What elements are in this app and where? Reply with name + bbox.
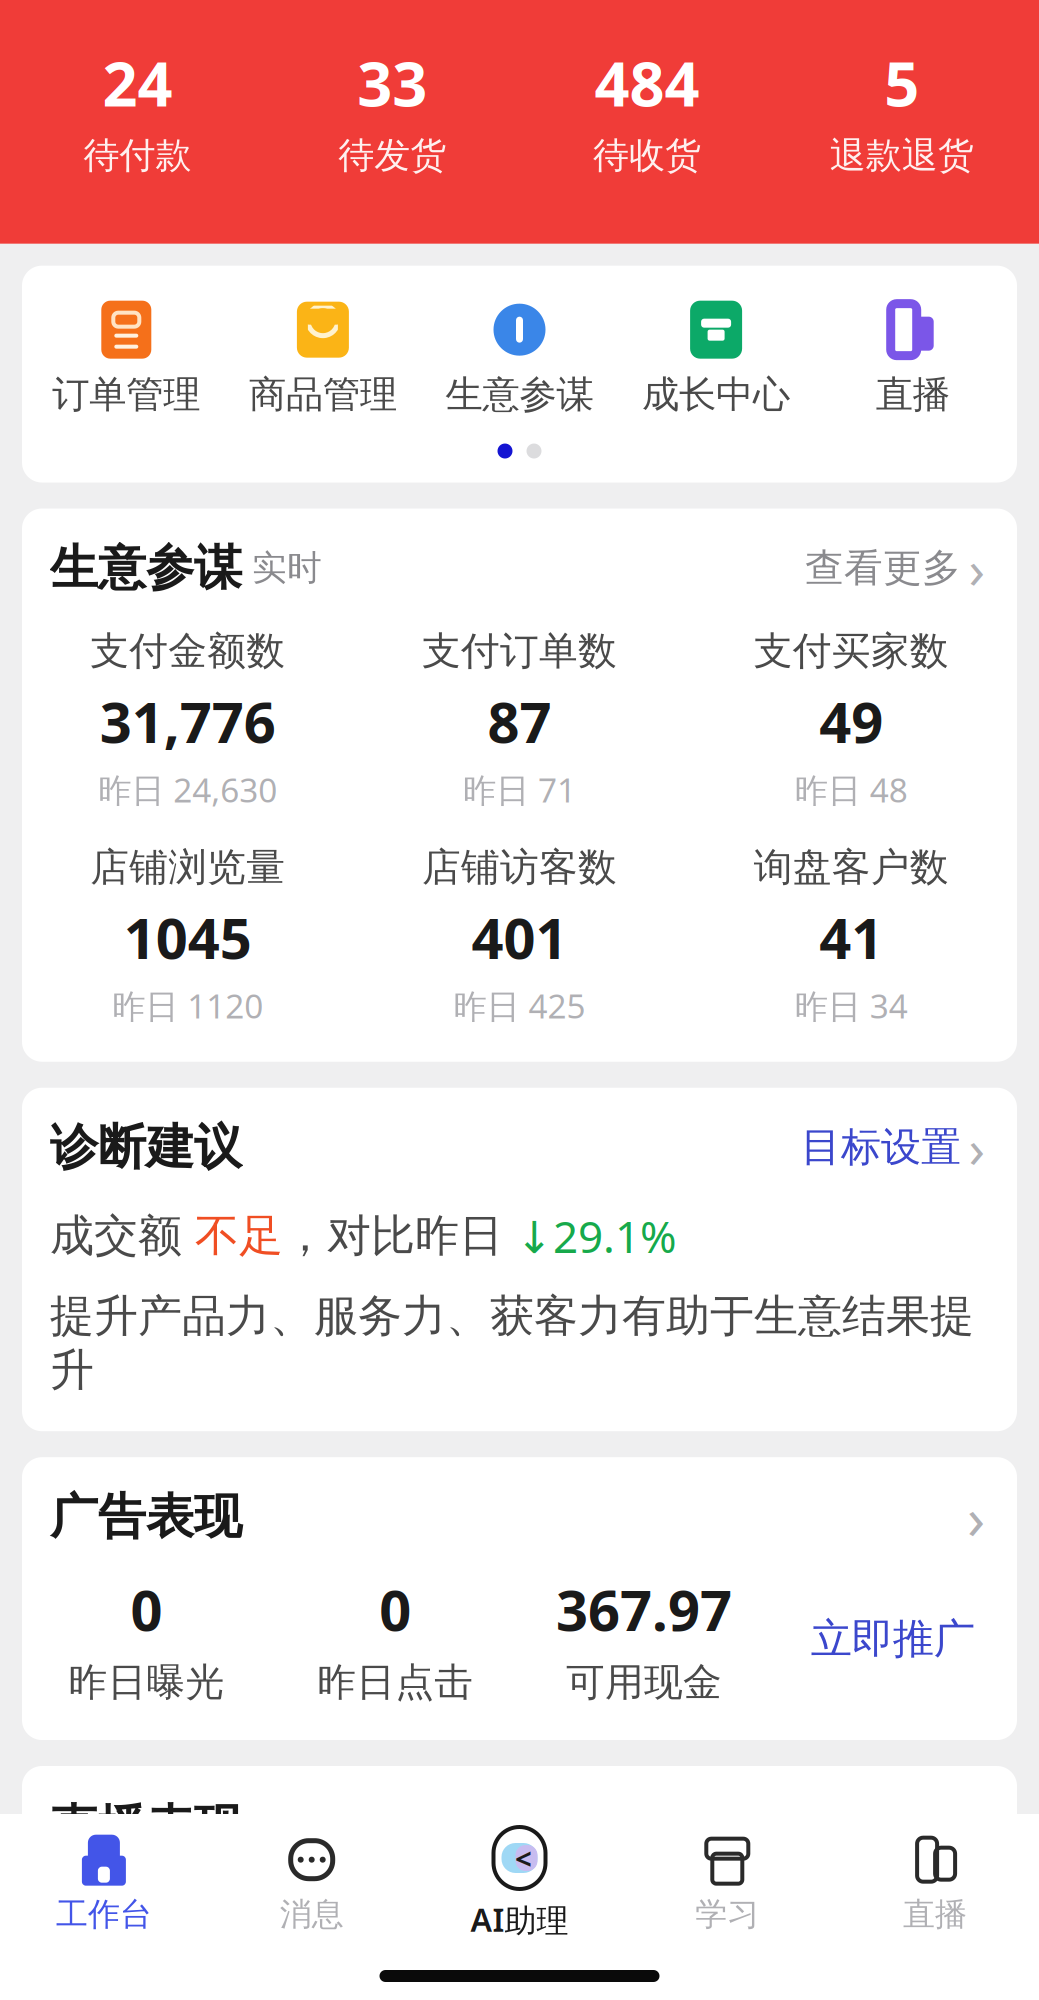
staticText: 学习: [695, 1895, 759, 1934]
button[interactable]: 消息: [208, 1821, 416, 1942]
staticText: 提升产品力、服务力、获客力有助于生意结果提升: [50, 1289, 974, 1397]
staticText: 工作台: [56, 1895, 152, 1934]
staticText: 昨日 425: [453, 983, 585, 1028]
staticText: 31,776: [100, 684, 276, 758]
staticText: 支付订单数: [422, 627, 617, 675]
staticText: 直播: [903, 1895, 967, 1934]
staticText: 实时: [242, 547, 322, 589]
staticText: 401: [471, 900, 567, 974]
staticText: ，对比昨日: [283, 1209, 516, 1263]
staticText: 昨日 34: [795, 983, 908, 1028]
staticText: ›: [968, 533, 985, 603]
staticText: 支付金额数: [90, 627, 285, 675]
staticText: 41: [819, 900, 883, 974]
staticText: 直播: [876, 372, 950, 418]
staticText: 484: [594, 42, 699, 123]
button[interactable]: 商品管理: [225, 300, 421, 418]
staticText: 昨日 48: [795, 767, 908, 812]
button[interactable]: 广告表现: [22, 1457, 1017, 1546]
staticText: 目标设置: [801, 1123, 961, 1172]
staticText: 不足: [195, 1209, 283, 1263]
staticText: 商品管理: [249, 372, 397, 418]
staticText: 生意参谋: [445, 372, 593, 418]
button[interactable]: 直播: [831, 1821, 1039, 1942]
staticText: 广告表现: [50, 1487, 242, 1546]
staticText: 店铺访客数: [422, 844, 617, 891]
staticText: ›: [968, 1112, 985, 1183]
button[interactable]: 直播表现: [22, 1766, 1017, 1917]
staticText: 367.97: [556, 1572, 732, 1647]
button[interactable]: 查看更多: [805, 544, 989, 592]
staticText: 1045: [124, 900, 252, 974]
staticText: 待收货: [593, 133, 701, 178]
staticText: AI助理: [470, 1898, 568, 1941]
button[interactable]: 订单管理: [28, 300, 225, 418]
button[interactable]: 直播: [814, 300, 1011, 418]
button[interactable]: 5: [774, 38, 1029, 182]
staticText: 昨日 71: [463, 767, 576, 812]
staticText: 24: [102, 42, 172, 123]
staticText: 查看更多: [805, 544, 961, 592]
staticText: 昨日 24,630: [98, 767, 277, 812]
staticText: 昨日 1120: [112, 983, 263, 1028]
button[interactable]: 生意参谋: [421, 300, 618, 418]
staticText: 直播表现: [50, 1798, 242, 1857]
button[interactable]: 成长中心: [618, 300, 814, 418]
button[interactable]: 工作台: [0, 1821, 208, 1942]
button[interactable]: <: [416, 1814, 623, 1949]
staticText: 成长中心: [642, 372, 790, 418]
staticText: 成交额: [50, 1209, 195, 1263]
staticText: 可用现金: [566, 1658, 722, 1706]
staticText: ↓29.1%: [516, 1207, 677, 1265]
staticText: 诊断建议: [50, 1118, 242, 1177]
staticText: 立即推广: [811, 1614, 975, 1664]
staticText: <: [515, 1838, 532, 1877]
staticText: 昨日点击: [317, 1658, 473, 1706]
staticText: 5: [884, 42, 919, 123]
staticText: 支付买家数: [754, 627, 949, 675]
button[interactable]: 484: [519, 38, 774, 182]
staticText: ›: [967, 1478, 985, 1556]
staticText: 退款退货: [830, 133, 974, 178]
staticText: 生意参谋: [50, 538, 242, 597]
staticText: 0: [379, 1572, 411, 1647]
staticText: 待发货: [338, 133, 446, 178]
staticText: 店铺浏览量: [90, 844, 285, 891]
staticText: 待付款: [83, 133, 191, 178]
staticText: 87: [487, 684, 551, 758]
button[interactable]: 立即推广: [768, 1614, 1017, 1664]
staticText: 消息: [280, 1895, 344, 1934]
button[interactable]: 目标设置: [801, 1123, 989, 1172]
staticText: 49: [819, 684, 883, 758]
staticText: 0: [130, 1572, 162, 1647]
staticText: 询盘客户数: [754, 844, 949, 891]
staticText: 昨日曝光: [68, 1658, 224, 1706]
staticText: 33: [357, 42, 427, 123]
button[interactable]: 学习: [623, 1821, 831, 1942]
staticText: 订单管理: [52, 372, 200, 418]
button[interactable]: 33: [265, 38, 520, 182]
button[interactable]: 24: [10, 38, 265, 182]
